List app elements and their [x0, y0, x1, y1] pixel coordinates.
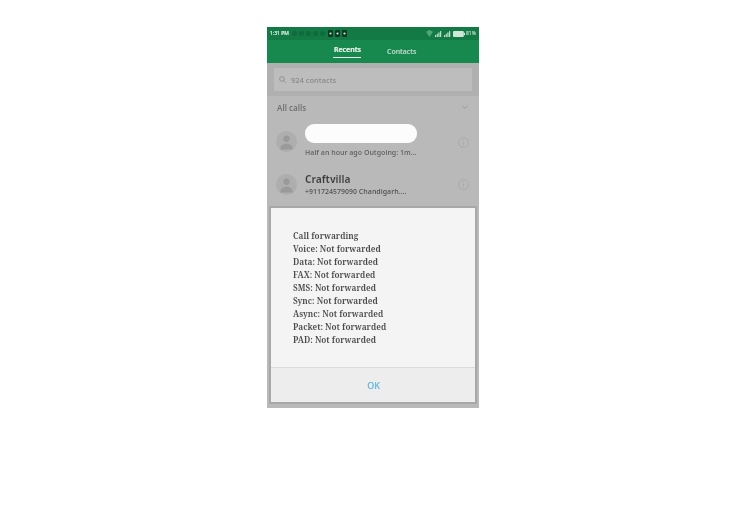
staticText: Recents [334, 45, 361, 55]
button[interactable]: OK [271, 368, 475, 402]
staticText: Async: Not forwarded [293, 308, 384, 319]
staticText: SMS: Not forwarded [293, 282, 376, 293]
staticText: FAX: Not forwarded [293, 269, 376, 280]
button[interactable]: Call details [456, 177, 470, 191]
staticText: PAD: Not forwarded [293, 334, 376, 345]
staticText: 81% [466, 30, 476, 37]
staticText: Craftvilla [305, 172, 351, 186]
staticText: Call forwarding [293, 230, 359, 241]
button[interactable]: All calls [267, 96, 479, 118]
button[interactable]: Recents [327, 43, 367, 60]
button[interactable]: Contacts [381, 45, 423, 59]
staticText: 1:31 PM [270, 30, 289, 37]
button[interactable]: 924 contacts [274, 68, 472, 91]
button[interactable]: Craftvilla [267, 165, 479, 203]
staticText: Half an hour ago Outgoing: 1m… [305, 148, 417, 158]
staticText: Sync: Not forwarded [293, 295, 378, 306]
staticText: Contacts [387, 47, 417, 57]
staticText: Data: Not forwarded [293, 256, 379, 267]
staticText: +911724579090 Chandigarh.… [305, 187, 407, 197]
staticText: All calls [277, 102, 307, 113]
staticText: Packet: Not forwarded [293, 321, 387, 332]
staticText: OK [367, 379, 380, 391]
staticText: 924 contacts [291, 75, 337, 85]
button[interactable]: Call details [456, 135, 470, 149]
staticText: Voice: Not forwarded [293, 243, 381, 254]
button[interactable]: Half an hour ago Outgoing: 1m… [267, 118, 479, 165]
